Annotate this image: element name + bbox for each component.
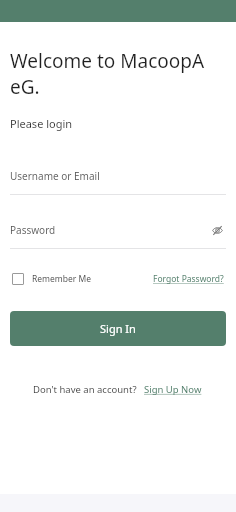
button[interactable]: Sign Up Now (143, 380, 203, 399)
staticText: Username or Email (10, 169, 100, 183)
staticText: Remember Me (32, 273, 92, 285)
button[interactable]: Username or Email (10, 165, 226, 187)
staticText: Please login (10, 116, 73, 131)
staticText: Sign In (100, 321, 136, 336)
button[interactable]: Show password (208, 221, 226, 239)
staticText: Password (10, 223, 56, 237)
staticText: Don't have an account? (33, 383, 137, 396)
staticText: Welcome to MacoopA eG. (10, 48, 226, 99)
button[interactable]: Forgot Password? (151, 269, 226, 289)
button[interactable]: Password (10, 219, 226, 241)
button[interactable]: Sign In (10, 311, 226, 346)
button[interactable]: Remember Me (10, 269, 94, 289)
staticText: Forgot Password? (153, 273, 224, 285)
staticText: Sign Up Now (144, 383, 202, 396)
